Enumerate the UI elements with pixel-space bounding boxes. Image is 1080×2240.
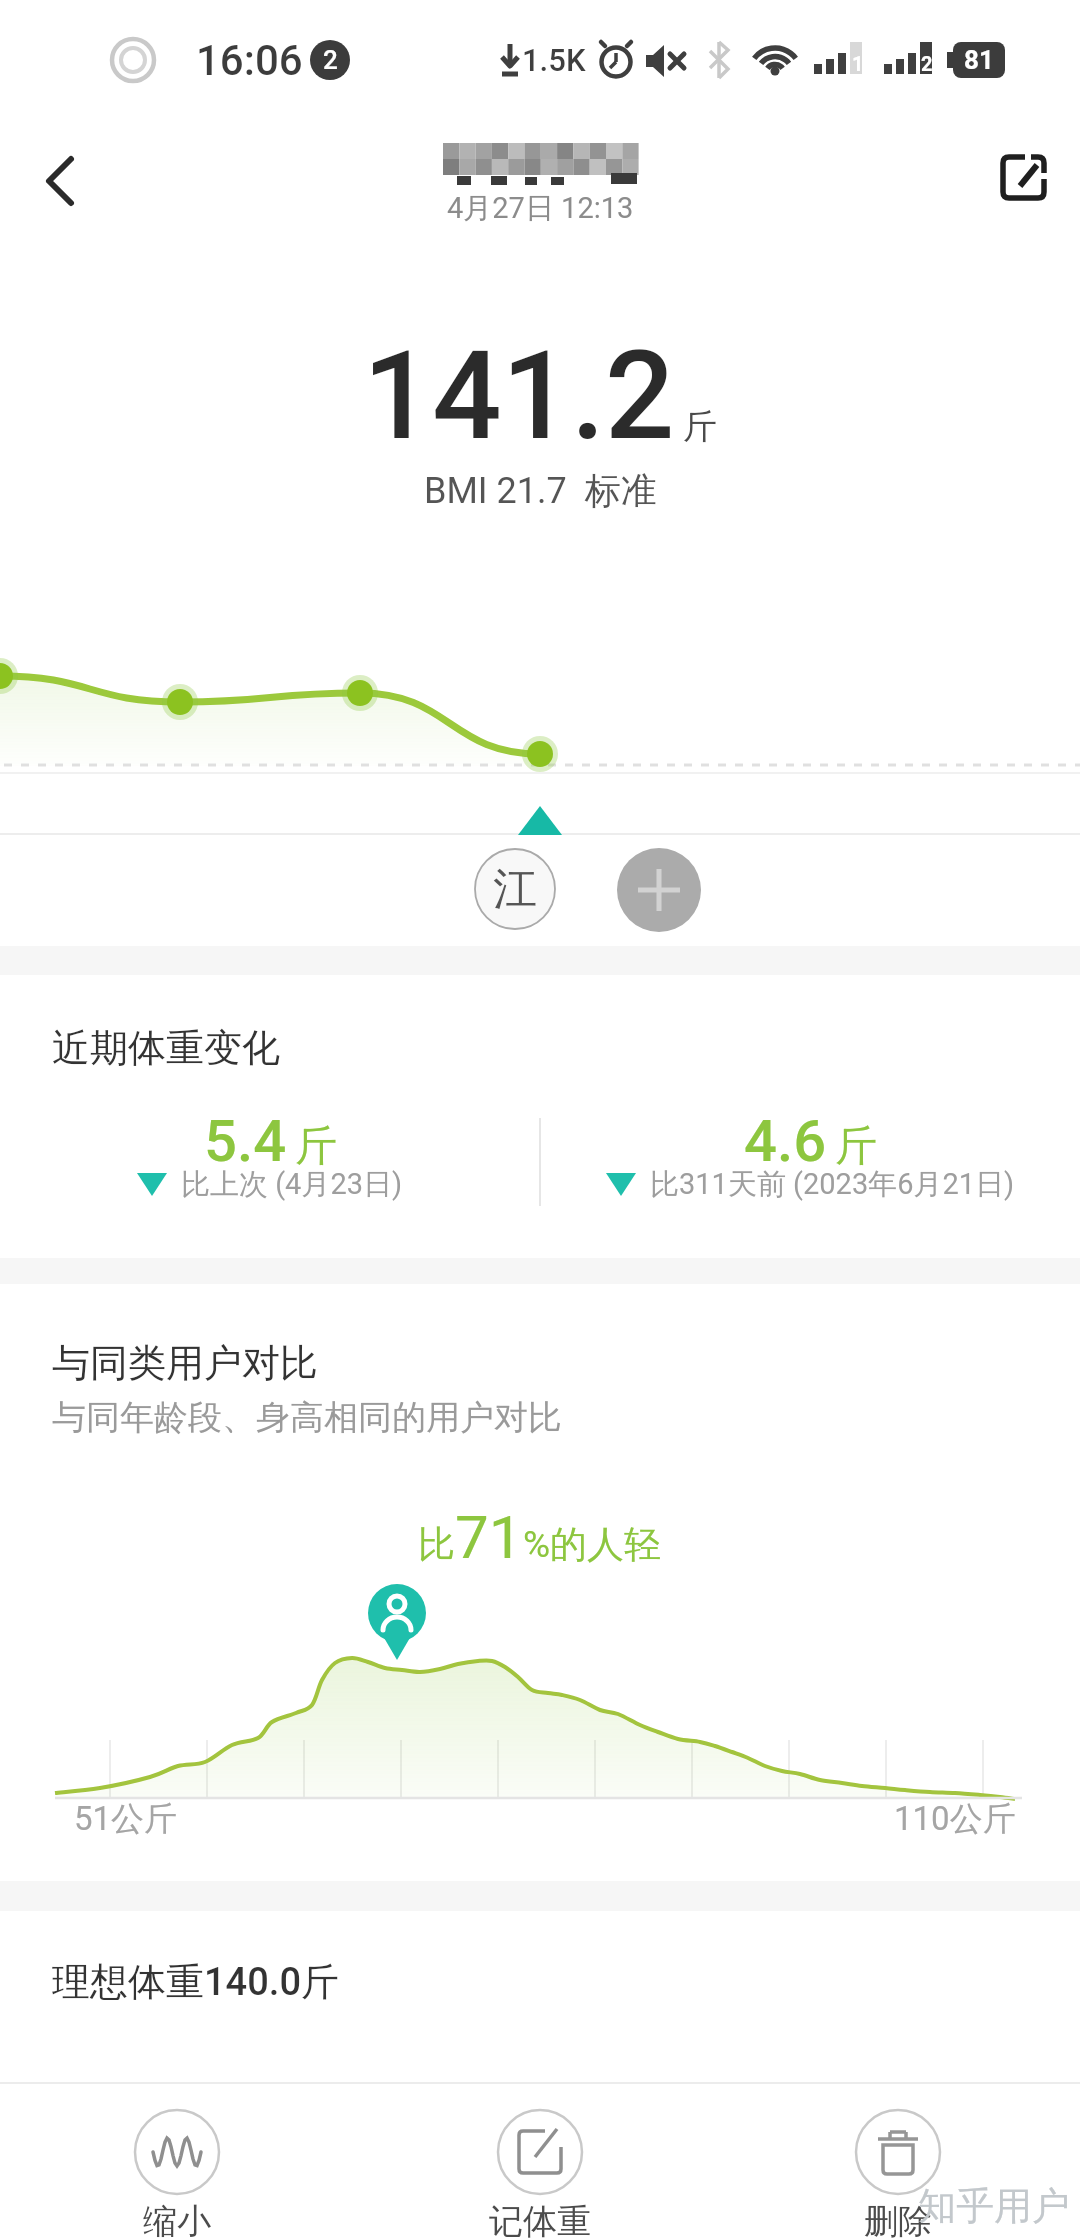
- button[interactable]: [25, 145, 97, 217]
- staticText: 1.5K: [522, 42, 586, 78]
- staticText: 删除: [864, 2200, 932, 2240]
- staticText: 81: [964, 45, 994, 75]
- staticText: 近期体重变化: [52, 1024, 280, 1072]
- staticText: %的人轻: [523, 1521, 662, 1568]
- staticText: 比上次 (4月23日): [181, 1166, 403, 1203]
- staticText: 51公斤: [74, 1798, 178, 1840]
- button[interactable]: 缩小: [117, 2104, 237, 2240]
- button[interactable]: 记体重: [480, 2104, 600, 2240]
- staticText: BMI 21.7 标准: [424, 468, 657, 513]
- staticText: 2: [921, 52, 933, 75]
- staticText: 与同类用户对比: [52, 1339, 318, 1387]
- staticText: 理想体重140.0斤: [52, 1958, 340, 2006]
- staticText: 141.2: [363, 325, 675, 468]
- button[interactable]: 删除: [838, 2104, 958, 2240]
- staticText: 5.4: [204, 1107, 287, 1175]
- staticText: 2: [323, 45, 338, 75]
- button[interactable]: [990, 150, 1058, 218]
- staticText: 与同年龄段、身高相同的用户对比: [52, 1396, 562, 1439]
- staticText: 缩小: [143, 2200, 211, 2240]
- staticText: 16:06: [196, 36, 303, 85]
- staticText: 比: [418, 1521, 455, 1568]
- staticText: 71: [455, 1502, 523, 1572]
- staticText: 知乎用户: [918, 2182, 1070, 2230]
- button[interactable]: [617, 848, 701, 932]
- staticText: 比311天前 (2023年6月21日): [650, 1166, 1015, 1203]
- staticText: 斤: [295, 1120, 337, 1173]
- button[interactable]: 江: [474, 848, 556, 930]
- staticText: 江: [493, 862, 537, 917]
- staticText: 斤: [683, 405, 717, 448]
- staticText: 4月27日 12:13: [447, 190, 634, 227]
- staticText: 斤: [835, 1120, 877, 1173]
- staticText: 记体重: [489, 2200, 591, 2240]
- staticText: 1: [852, 52, 864, 75]
- staticText: 4.6: [744, 1107, 827, 1175]
- staticText: 110公斤: [894, 1798, 1016, 1840]
